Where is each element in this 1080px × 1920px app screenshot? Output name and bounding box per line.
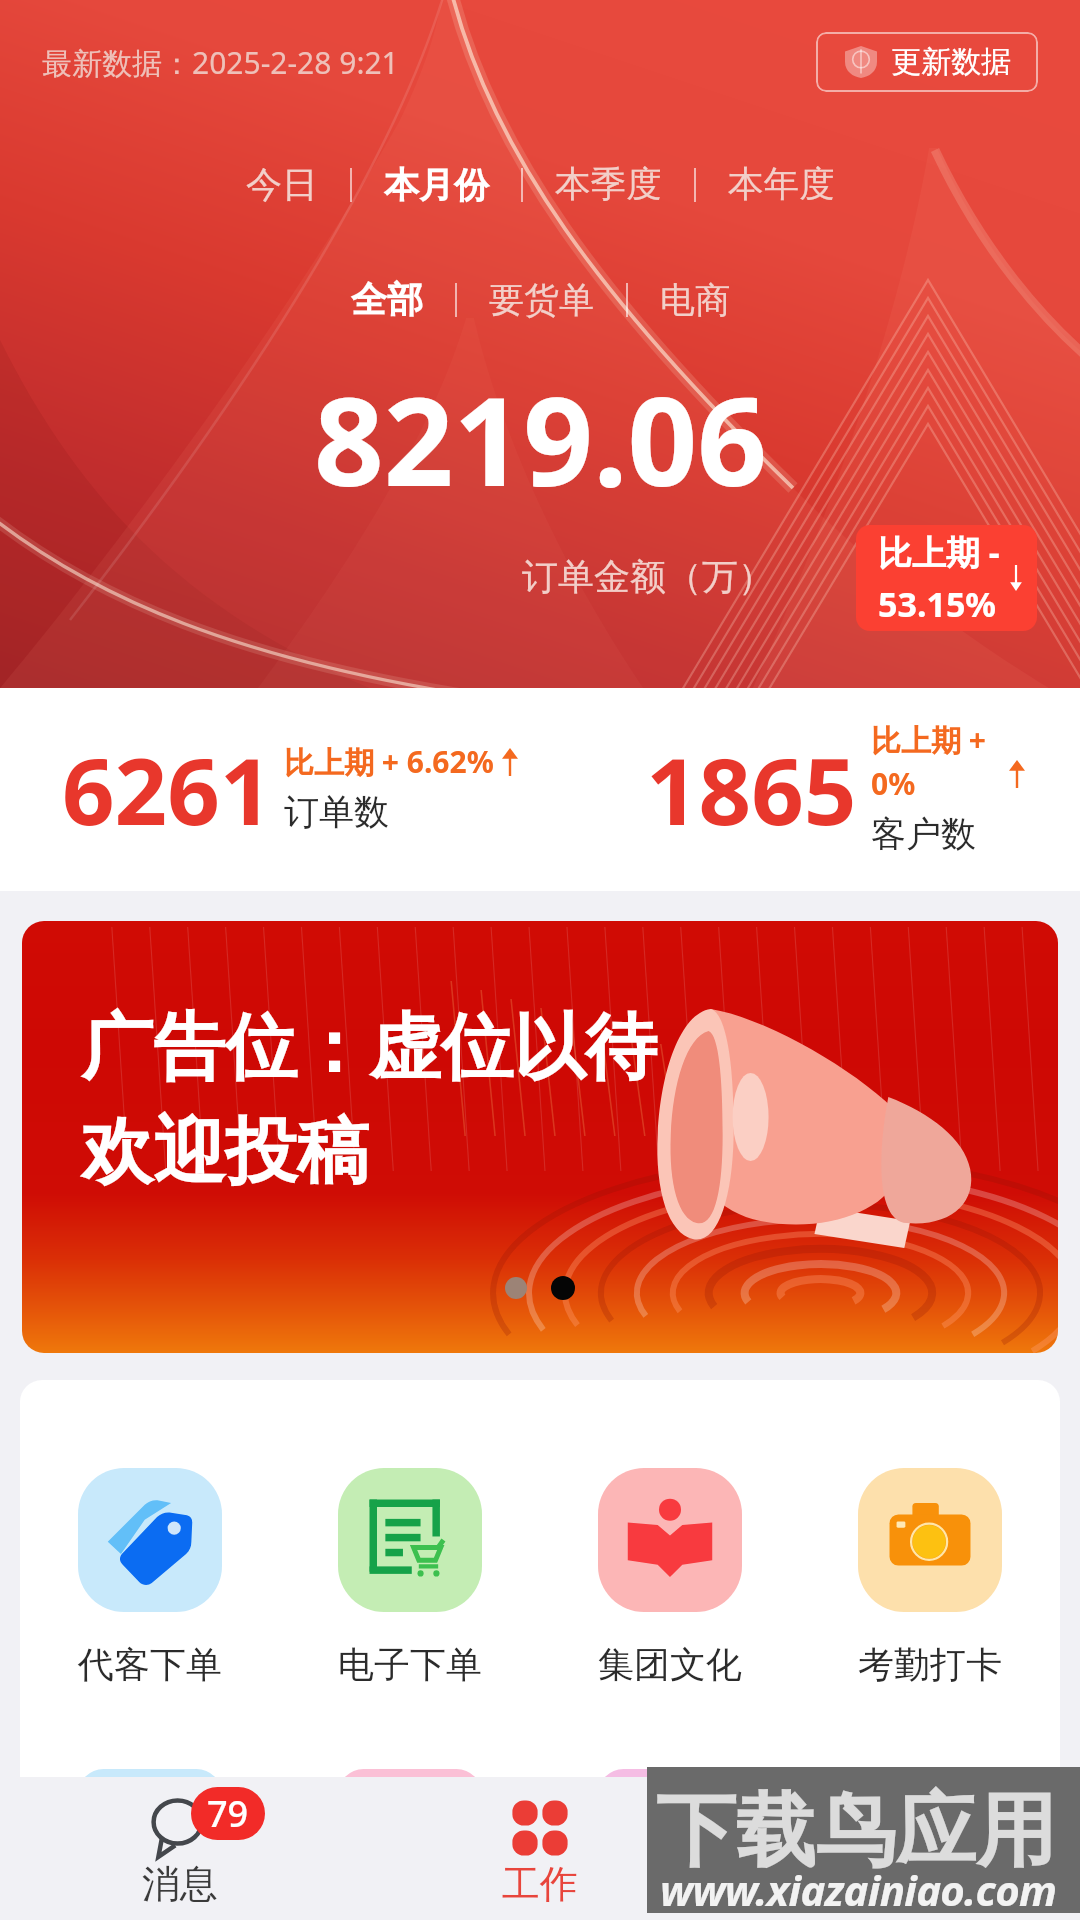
button[interactable]: 今日 (242, 156, 322, 213)
staticText: 下载鸟应用 (656, 1781, 1056, 1882)
button[interactable]: 更新数据 (816, 32, 1038, 92)
button[interactable]: 电子下单 (280, 1468, 540, 1687)
staticText: 电商 (660, 278, 730, 322)
button[interactable]: 我的客户 (280, 1769, 540, 1820)
button[interactable]: 数据报表 (540, 1769, 800, 1820)
staticText: 79 (207, 1789, 249, 1838)
staticText: 消息 (142, 1860, 218, 1908)
button[interactable]: 79 (0, 1777, 360, 1920)
staticText: 1865 (646, 727, 857, 852)
button[interactable]: 比上期 -53.15% (856, 525, 1037, 631)
button[interactable]: 本年度 (724, 156, 839, 213)
button[interactable]: 考勤打卡 (800, 1468, 1060, 1687)
staticText: 工作 (502, 1860, 578, 1908)
staticText: 最新数据：2025-2-28 9:21 (42, 42, 399, 83)
staticText: 本年度 (728, 162, 835, 207)
staticText: 要货单 (489, 278, 594, 322)
button[interactable]: 更多应用 (800, 1769, 1060, 1820)
button[interactable]: 第 2 页 (551, 1276, 575, 1300)
button[interactable]: 订单查询 (20, 1769, 280, 1820)
button[interactable]: 6261 (62, 688, 642, 891)
staticText: 比上期 + 6.62% (284, 741, 494, 782)
staticText: 广告位：虚位以待 (81, 1003, 657, 1094)
button[interactable]: 工作 (360, 1777, 720, 1920)
button[interactable]: 集团文化 (540, 1468, 800, 1687)
button[interactable]: 1865 (646, 688, 1026, 891)
button[interactable]: 本月份 (380, 157, 493, 213)
staticText: 本月份 (384, 163, 489, 207)
staticText: 8219.06 (314, 356, 767, 522)
staticText: 更新数据 (891, 43, 1011, 81)
staticText: 全部 (351, 277, 423, 322)
staticText: 比上期 + 0% (871, 719, 987, 804)
staticText: 电子下单 (338, 1642, 482, 1687)
staticText: 我的 (862, 1860, 938, 1908)
button[interactable]: 全部 (347, 271, 427, 328)
staticText: www.xiazainiao.com (660, 1861, 1057, 1918)
staticText: 客户数 (871, 812, 976, 856)
staticText: 比上期 - 53.15% (878, 529, 1000, 627)
button[interactable]: 广告位：虚位以待，欢迎投稿 (22, 921, 1058, 1353)
staticText: 6261 (62, 727, 273, 852)
staticText: 订单金额（万） (522, 554, 774, 599)
staticText: 欢迎投稿 (81, 1107, 369, 1198)
button[interactable]: 我的 (720, 1777, 1080, 1920)
button[interactable]: 要货单 (485, 272, 598, 328)
button[interactable]: 第 1 页 (505, 1277, 527, 1299)
staticText: 本季度 (555, 162, 662, 207)
button[interactable]: 本季度 (551, 156, 666, 213)
staticText: 代客下单 (78, 1642, 222, 1687)
button[interactable]: 代客下单 (20, 1468, 280, 1687)
staticText: 订单数 (284, 790, 389, 834)
staticText: 集团文化 (598, 1642, 742, 1687)
staticText: 今日 (246, 162, 318, 207)
button[interactable]: 电商 (656, 272, 734, 328)
staticText: 考勤打卡 (858, 1642, 1002, 1687)
